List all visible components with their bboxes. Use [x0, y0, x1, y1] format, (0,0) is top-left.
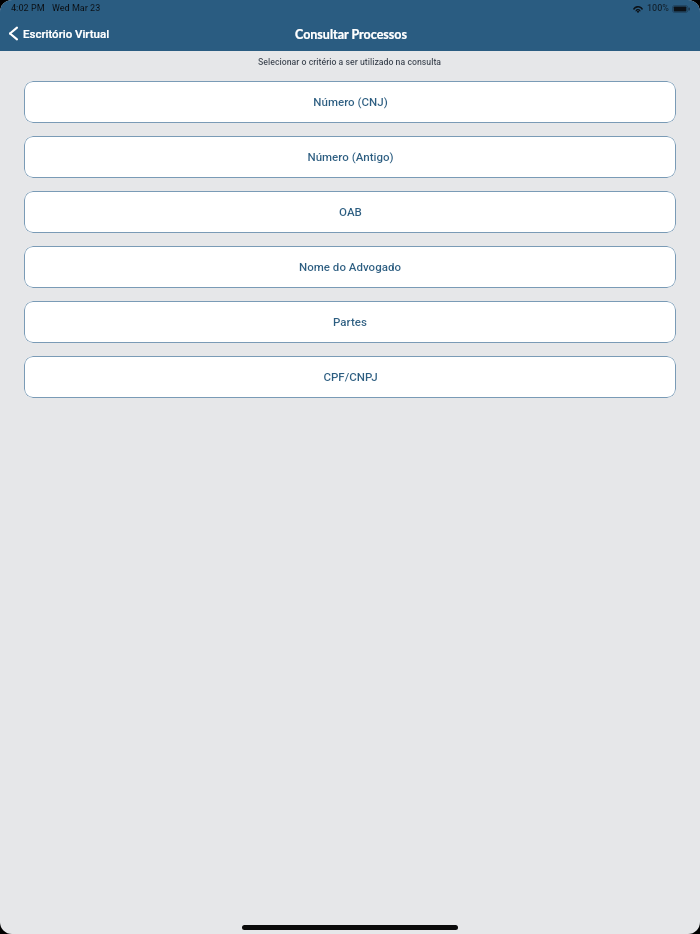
- staticText: Escritório Virtual: [23, 27, 110, 40]
- button[interactable]: Partes: [24, 301, 676, 343]
- staticText: Selecionar o critério a ser utilizado na…: [258, 57, 442, 67]
- staticText: OAB: [339, 205, 362, 219]
- staticText: Nome do Advogado: [299, 260, 401, 274]
- staticText: 4:02 PM: [11, 3, 45, 14]
- staticText: Consultar Processos: [295, 27, 407, 42]
- button[interactable]: Nome do Advogado: [24, 246, 676, 288]
- other: Back: [9, 26, 18, 41]
- staticText: Partes: [333, 315, 367, 329]
- button[interactable]: OAB: [24, 191, 676, 233]
- staticText: CPF/CNPJ: [323, 370, 378, 384]
- staticText: Número (CNJ): [313, 95, 388, 109]
- staticText: 100%: [647, 3, 669, 14]
- staticText: Wed Mar 23: [52, 3, 101, 14]
- button[interactable]: CPF/CNPJ: [24, 356, 676, 398]
- button[interactable]: Número (CNJ): [24, 81, 676, 123]
- button[interactable]: Back: [4, 20, 118, 47]
- staticText: Número (Antigo): [307, 150, 394, 164]
- button[interactable]: Número (Antigo): [24, 136, 676, 178]
